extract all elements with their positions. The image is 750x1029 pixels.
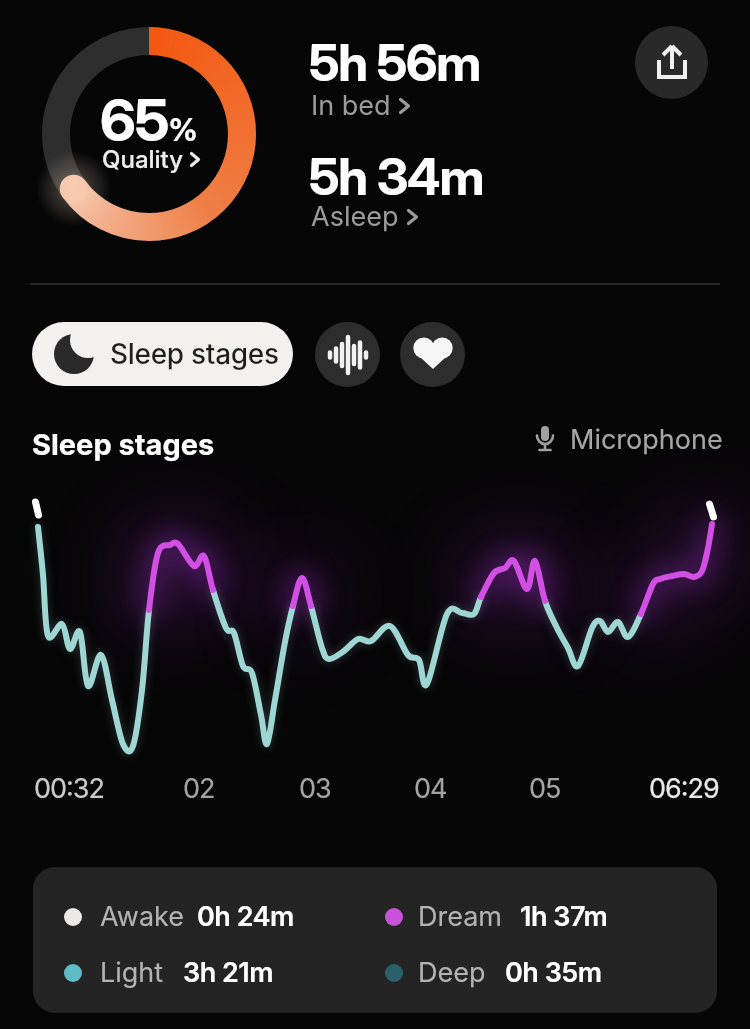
staticText: 3h 21m bbox=[183, 956, 274, 989]
staticText: Light bbox=[100, 956, 164, 989]
button[interactable]: Microphone bbox=[535, 423, 723, 456]
staticText: 5h 34m bbox=[309, 146, 484, 208]
staticText: 06:29 bbox=[649, 772, 719, 805]
staticText: Sleep stages bbox=[32, 427, 215, 462]
button[interactable] bbox=[315, 322, 380, 387]
staticText: Quality bbox=[102, 145, 184, 174]
button[interactable]: Asleep bbox=[311, 200, 417, 233]
button[interactable] bbox=[42, 27, 256, 241]
staticText: 03 bbox=[299, 772, 331, 805]
staticText: 05 bbox=[529, 772, 561, 805]
staticText: 0h 35m bbox=[505, 956, 602, 989]
staticText: 0h 24m bbox=[197, 900, 294, 933]
staticText: 5h 56m bbox=[309, 32, 481, 94]
staticText: Asleep bbox=[311, 200, 399, 233]
staticText: Dream bbox=[418, 900, 503, 933]
staticText: Microphone bbox=[570, 423, 723, 456]
button[interactable] bbox=[635, 26, 708, 99]
staticText: 02 bbox=[183, 772, 215, 805]
staticText: 00:32 bbox=[34, 772, 104, 805]
button[interactable] bbox=[400, 322, 465, 387]
button[interactable]: In bed bbox=[311, 89, 409, 122]
staticText: 04 bbox=[414, 772, 447, 805]
staticText: 1h 37m bbox=[520, 900, 608, 933]
staticText: In bed bbox=[311, 89, 391, 122]
staticText: Deep bbox=[418, 956, 486, 989]
staticText: 65% bbox=[100, 85, 198, 155]
staticText: Awake bbox=[100, 900, 185, 933]
staticText: Sleep stages bbox=[110, 337, 279, 371]
button[interactable]: Sleep stages bbox=[32, 322, 293, 386]
